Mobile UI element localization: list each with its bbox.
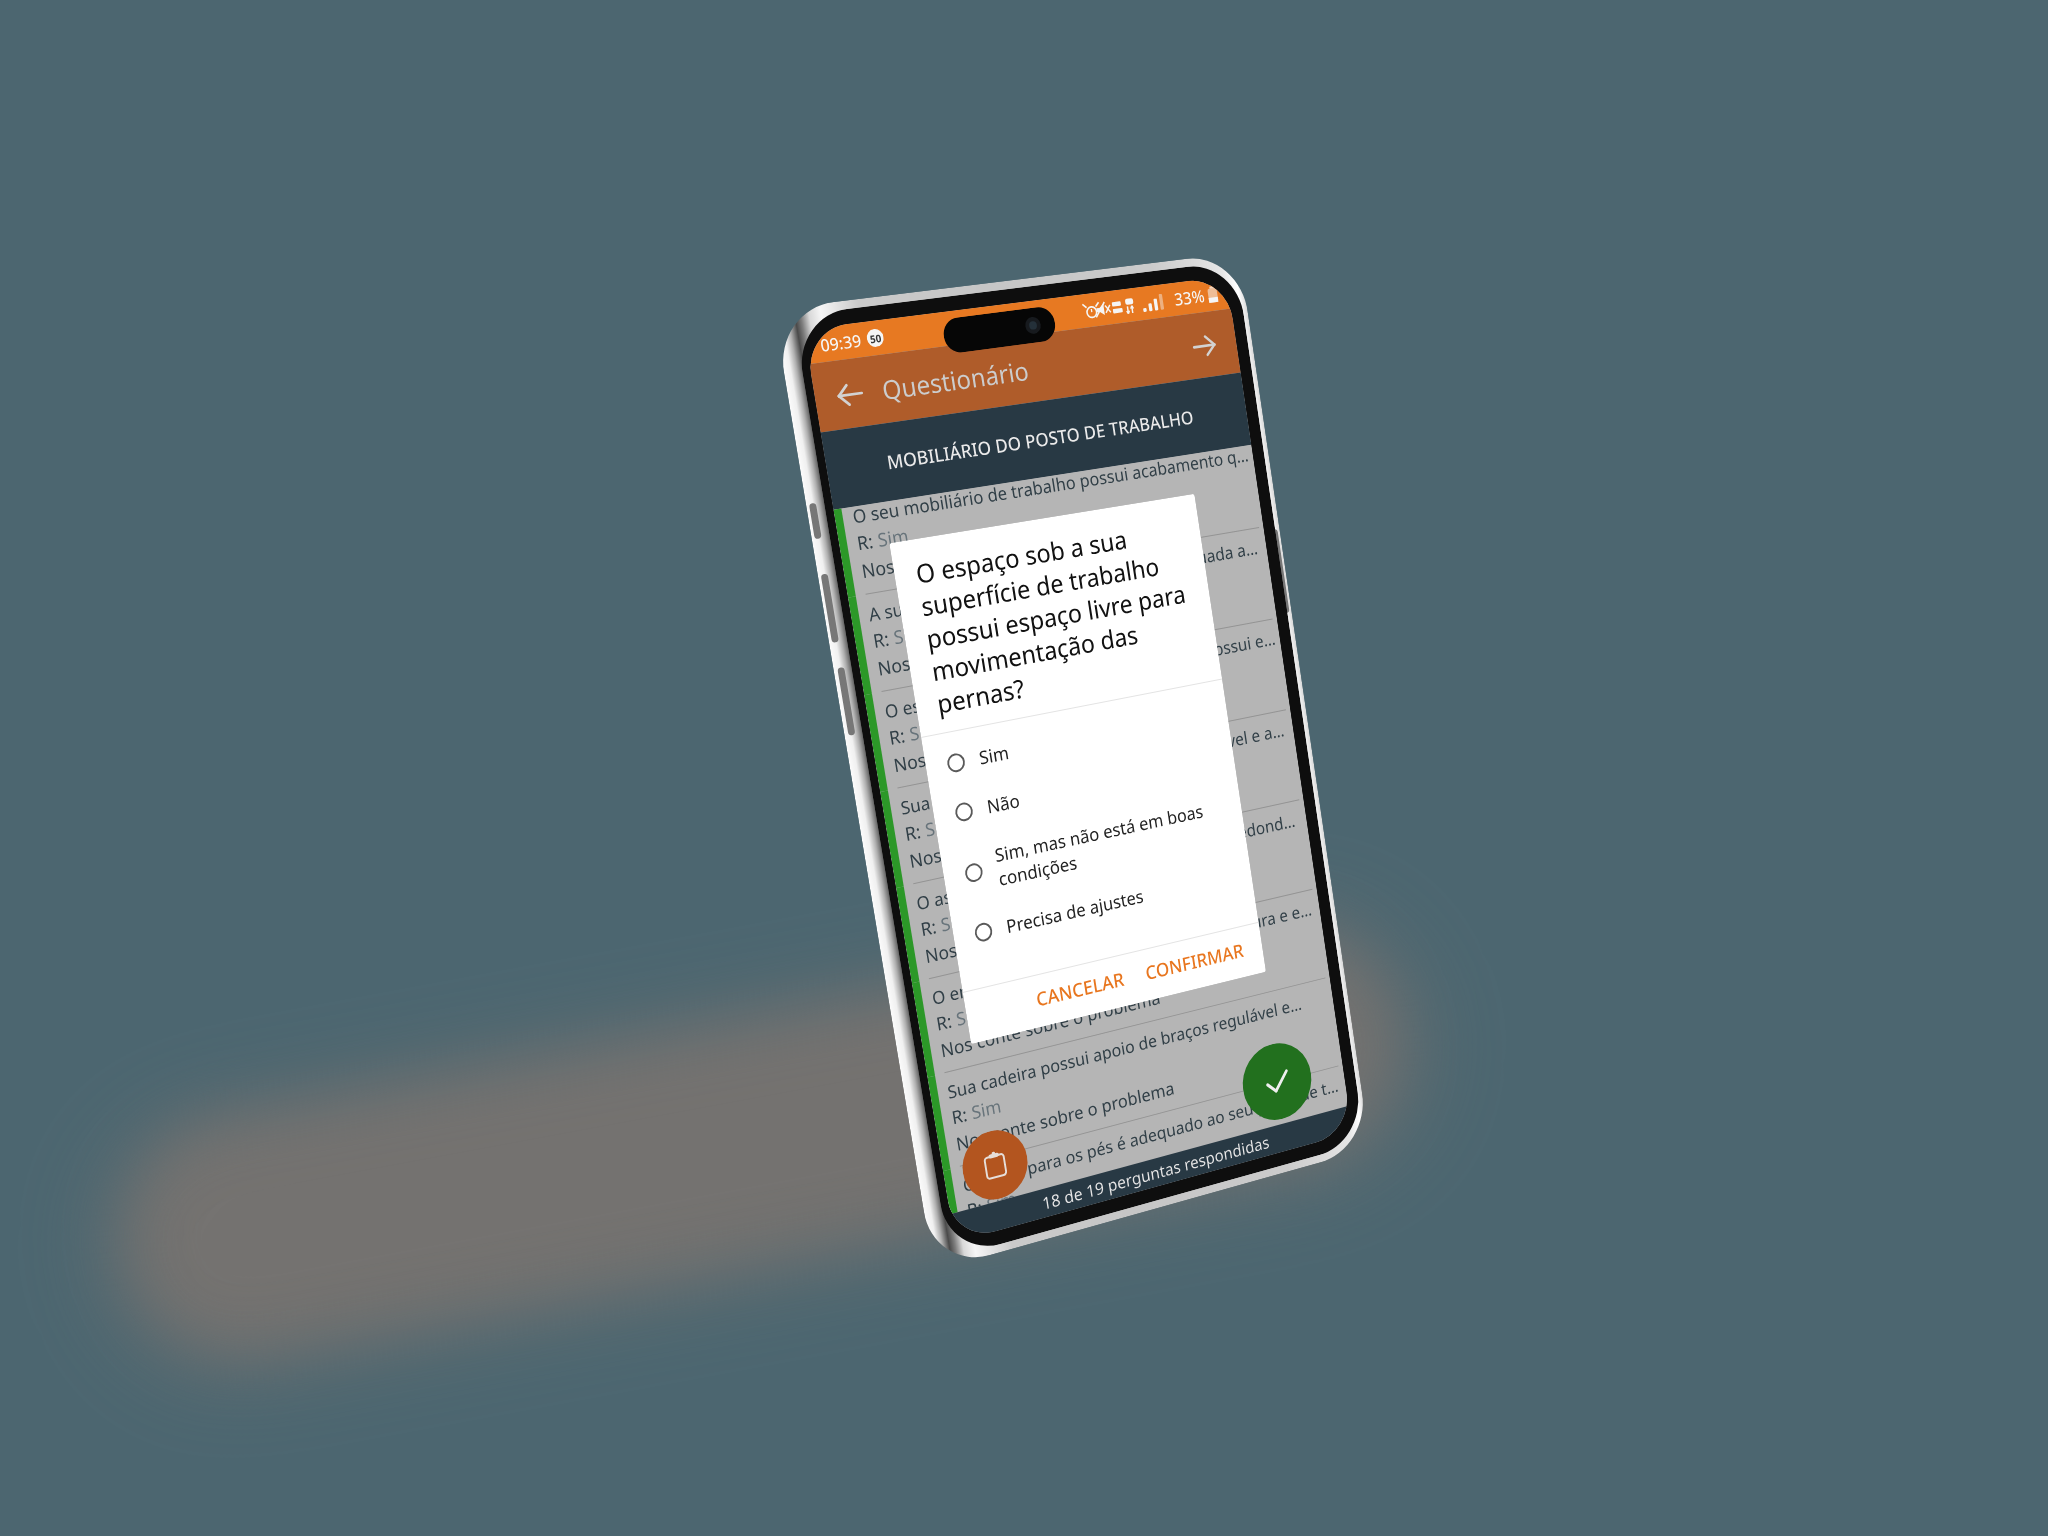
staticText: Nos conte sobre o problema — [860, 521, 1090, 584]
staticText: O seu mobiliário de trabalho possui acab… — [851, 445, 1250, 529]
staticText: Sim — [907, 716, 942, 747]
staticText: Sim — [939, 906, 973, 938]
button[interactable]: Não — [930, 732, 1237, 843]
staticText: CANCELAR — [1034, 966, 1126, 1012]
button[interactable]: Anotações — [957, 1123, 1032, 1207]
staticText: R: — [871, 625, 896, 654]
staticText: CONFIRMAR — [1144, 938, 1245, 986]
staticText: O assento da sua cadeira possui bordas a… — [914, 807, 1304, 915]
staticText: O espaço sob a sua superfície de trabalh… — [883, 626, 1277, 724]
button[interactable]: Sua cadeira possui apoio de braços regul… — [927, 977, 1343, 1171]
staticText: 50 — [869, 330, 883, 346]
button[interactable]: Precisa de ajustes — [950, 848, 1254, 963]
staticText: O encosto da sua cadeira é ajustável em … — [930, 896, 1317, 1010]
button[interactable]: A sua bancada de trabalho tem altura ade… — [848, 527, 1277, 695]
staticText: Nos conte sobre o problema — [908, 802, 1134, 874]
staticText: Nos conte sobre o problema — [939, 985, 1162, 1063]
staticText: 09:39 — [819, 329, 863, 357]
staticText: R: — [950, 1101, 974, 1130]
button[interactable]: Sua cadeira possui altura do assento reg… — [880, 709, 1303, 888]
staticText: MOBILIÁRIO DO POSTO DE TRABALHO — [885, 405, 1196, 476]
staticText: Não — [985, 788, 1022, 819]
staticText: Nos conte sobre o problema — [876, 616, 1105, 682]
staticText: Sim — [876, 522, 911, 553]
staticText: 18 de 19 perguntas respondidas — [1041, 1131, 1271, 1215]
staticText: Nos conte sobre o problema — [892, 709, 1119, 778]
button[interactable]: CONFIRMAR — [1134, 931, 1254, 993]
button[interactable]: CANCELAR — [1024, 959, 1136, 1020]
staticText: R: — [903, 818, 927, 847]
button[interactable]: Voltar — [823, 367, 876, 421]
button[interactable]: Sim — [922, 685, 1230, 793]
staticText: Sua cadeira possui apoio de braços regul… — [946, 992, 1303, 1104]
staticText: R: — [934, 1007, 958, 1037]
button[interactable]: Sim, mas não está em boas condições — [938, 779, 1247, 914]
staticText: Sim — [977, 740, 1011, 771]
button[interactable]: O assento da sua cadeira possui bordas a… — [896, 799, 1317, 983]
staticText: Sim — [954, 1000, 988, 1032]
staticText: R: — [965, 1194, 987, 1210]
button[interactable]: Concluir questionário — [1237, 1036, 1316, 1128]
staticText: Sim — [923, 811, 958, 843]
staticText: R: — [887, 722, 912, 751]
staticText: Precisa de ajustes — [1004, 884, 1145, 939]
staticText: R: — [919, 913, 943, 942]
staticText: Sim — [985, 1186, 1016, 1204]
staticText: A sua bancada de trabalho tem altura ade… — [867, 535, 1264, 627]
staticText: Nos conte sobre o problema — [954, 1076, 1176, 1157]
staticText: R: — [855, 527, 880, 556]
staticText: O espaço sob a sua superfície de trabalh… — [913, 513, 1201, 721]
button[interactable]: O seu mobiliário de trabalho possui acab… — [833, 445, 1263, 598]
button[interactable]: O apoio para os pés é adequado ao seu po… — [943, 1065, 1349, 1214]
staticText: Sim — [970, 1093, 1003, 1125]
staticText: Nos conte sobre o problema — [923, 894, 1148, 969]
staticText: Sim — [892, 620, 927, 651]
staticText: 33% — [1173, 284, 1206, 311]
staticText: O apoio para os pés é adequado ao seu po… — [961, 1073, 1343, 1197]
button[interactable]: O espaço sob a sua superfície de trabalh… — [864, 619, 1290, 792]
staticText: Sim, mas não está em boas condições — [993, 799, 1209, 891]
button[interactable]: O encosto da sua cadeira é ajustável em … — [912, 889, 1330, 1078]
staticText: Sua cadeira possui altura do assento reg… — [899, 717, 1290, 820]
button[interactable]: Próxima seção — [1180, 320, 1227, 371]
staticText: Questionário — [879, 352, 1032, 407]
